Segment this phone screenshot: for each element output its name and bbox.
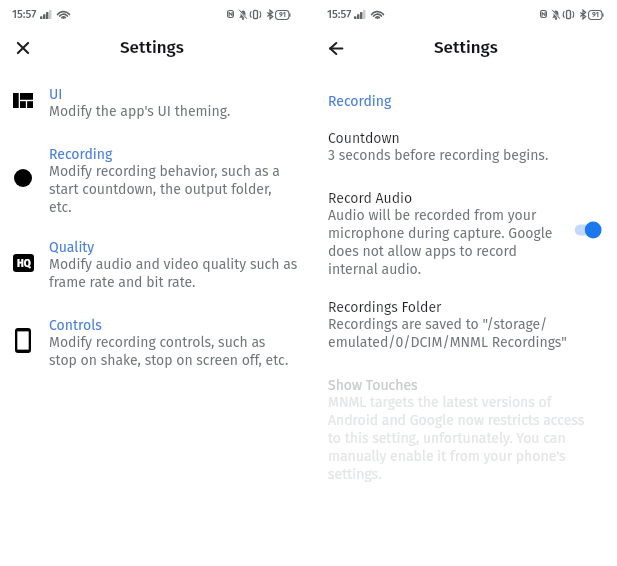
button[interactable]: Recordings Folder [313, 299, 617, 351]
button[interactable]: Countdown [313, 130, 617, 164]
button[interactable]: UI [0, 86, 313, 120]
button[interactable]: Close [7, 32, 39, 64]
staticText: Settings [120, 37, 184, 57]
staticText: Audio will be recorded from your microph… [328, 207, 553, 278]
staticText: 15:57 [327, 8, 352, 21]
button[interactable]: Record audio toggle [565, 216, 609, 244]
button[interactable]: Show Touches [313, 377, 617, 483]
staticText: Modify recording behavior, such as a sta… [49, 163, 280, 216]
staticText: UI [49, 86, 63, 103]
staticText: Modify the app's UI theming. [49, 103, 231, 120]
staticText: Modify audio and video quality such as f… [49, 256, 298, 291]
staticText: Modify recording controls, such as stop … [49, 334, 289, 369]
staticText: Settings [434, 37, 498, 57]
staticText: Quality [49, 239, 95, 256]
staticText: Recordings Folder [328, 299, 442, 316]
staticText: Recording [49, 146, 113, 163]
staticText: 3 seconds before recording begins. [328, 147, 549, 164]
button[interactable]: Controls [0, 317, 313, 369]
staticText: Controls [49, 317, 102, 334]
staticText: Show Touches [328, 377, 418, 394]
staticText: 15:57 [12, 8, 37, 21]
staticText: 91 [279, 11, 286, 19]
staticText: Countdown [328, 130, 400, 147]
staticText: MNML targets the latest versions of Andr… [328, 394, 585, 483]
staticText: Record Audio [328, 190, 413, 207]
staticText: Recordings are saved to "/storage/ emula… [328, 316, 567, 351]
staticText: Recording [328, 93, 392, 110]
button[interactable]: Quality [0, 239, 313, 291]
staticText: HQ [17, 257, 31, 269]
button[interactable]: Back [320, 32, 352, 64]
staticText: 91 [592, 11, 599, 19]
button[interactable]: Record Audio [313, 190, 617, 278]
button[interactable]: Recording [0, 146, 313, 216]
